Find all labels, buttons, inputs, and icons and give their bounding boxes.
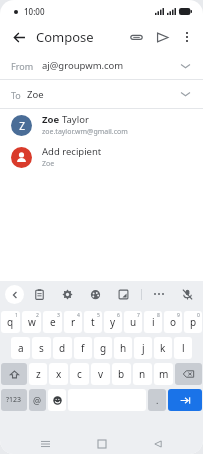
button[interactable]: y bbox=[104, 311, 122, 333]
staticText: b bbox=[118, 367, 125, 381]
staticText: y bbox=[110, 315, 116, 329]
staticText: r bbox=[71, 315, 76, 329]
button[interactable]: f bbox=[74, 337, 92, 359]
button[interactable]: Z bbox=[0, 109, 203, 141]
button[interactable]: p bbox=[184, 311, 202, 333]
staticText: i bbox=[152, 315, 155, 329]
button[interactable]: v bbox=[91, 363, 110, 385]
staticText: k bbox=[160, 341, 166, 355]
staticText: e bbox=[50, 315, 56, 329]
button[interactable]: Resize keyboard bbox=[115, 286, 132, 303]
button[interactable]: b bbox=[112, 363, 131, 385]
button[interactable]: q bbox=[1, 311, 20, 333]
staticText: f bbox=[81, 341, 85, 355]
button[interactable]: At sign bbox=[29, 389, 46, 411]
staticText: Zoe bbox=[42, 113, 62, 126]
button[interactable]: Recent apps bbox=[34, 433, 56, 454]
staticText: Taylor bbox=[62, 113, 89, 126]
staticText: . bbox=[156, 394, 159, 406]
button[interactable]: Backspace bbox=[175, 363, 202, 385]
staticText: aj@groupwm.com bbox=[42, 59, 124, 72]
staticText: n bbox=[139, 367, 146, 381]
staticText: 3 bbox=[57, 312, 60, 319]
button[interactable]: Themes bbox=[87, 286, 104, 303]
button[interactable]: More options bbox=[175, 25, 199, 49]
staticText: q bbox=[7, 315, 14, 329]
staticText: x bbox=[56, 367, 62, 381]
staticText: u bbox=[130, 315, 137, 329]
button[interactable]: Voice input off bbox=[179, 286, 195, 302]
button[interactable]: o bbox=[164, 311, 182, 333]
button[interactable]: w bbox=[22, 311, 41, 333]
staticText: 10:00 bbox=[24, 6, 45, 17]
button[interactable]: s bbox=[32, 337, 51, 359]
button[interactable]: Shift bbox=[1, 363, 27, 385]
button[interactable]: Clipboard bbox=[31, 286, 48, 303]
button[interactable]: To bbox=[0, 80, 203, 108]
button[interactable]: Period bbox=[148, 389, 166, 411]
button[interactable]: Send bbox=[149, 24, 175, 50]
button[interactable]: k bbox=[154, 337, 172, 359]
staticText: @ bbox=[33, 394, 42, 406]
staticText: zoe.taylor.wm@gmail.com bbox=[42, 127, 128, 137]
staticText: v bbox=[98, 367, 104, 381]
staticText: 5 bbox=[97, 312, 100, 319]
button[interactable]: u bbox=[124, 311, 142, 333]
button[interactable]: g bbox=[94, 337, 112, 359]
button[interactable]: From bbox=[0, 52, 203, 79]
staticText: Add recipient bbox=[42, 145, 102, 158]
button[interactable]: d bbox=[53, 337, 72, 359]
button[interactable]: Settings bbox=[59, 286, 76, 303]
staticText: To bbox=[11, 89, 21, 101]
staticText: Zoe bbox=[42, 159, 55, 169]
staticText: o bbox=[170, 315, 177, 329]
button[interactable]: j bbox=[134, 337, 152, 359]
button[interactable]: Emoji bbox=[48, 389, 66, 411]
staticText: Z bbox=[19, 119, 25, 133]
staticText: j bbox=[142, 341, 145, 355]
staticText: w bbox=[28, 315, 36, 329]
button[interactable]: Add recipient bbox=[0, 141, 203, 173]
button[interactable]: l bbox=[174, 337, 192, 359]
staticText: 6 bbox=[117, 312, 120, 319]
button[interactable]: Attach file bbox=[123, 24, 149, 50]
staticText: t bbox=[91, 315, 95, 329]
staticText: Zoe bbox=[27, 88, 44, 101]
button[interactable]: h bbox=[114, 337, 132, 359]
button[interactable]: n bbox=[133, 363, 152, 385]
staticText: From bbox=[11, 60, 34, 72]
staticText: Compose bbox=[36, 28, 94, 46]
button[interactable]: a bbox=[11, 337, 30, 359]
staticText: c bbox=[77, 367, 82, 381]
staticText: 2 bbox=[36, 312, 39, 319]
button[interactable]: e bbox=[43, 311, 62, 333]
button[interactable]: c bbox=[70, 363, 89, 385]
button[interactable]: x bbox=[49, 363, 68, 385]
staticText: 7 bbox=[137, 312, 140, 319]
staticText: 8 bbox=[157, 312, 160, 319]
button[interactable]: m bbox=[154, 363, 173, 385]
button[interactable]: ?123 bbox=[1, 389, 27, 411]
staticText: 9 bbox=[177, 312, 180, 319]
staticText: d bbox=[59, 341, 66, 355]
button[interactable]: i bbox=[144, 311, 162, 333]
button[interactable]: z bbox=[29, 363, 47, 385]
staticText: a bbox=[18, 341, 24, 355]
staticText: 1 bbox=[15, 312, 18, 319]
staticText: m bbox=[159, 367, 169, 381]
staticText: l bbox=[182, 341, 185, 355]
button[interactable]: Back bbox=[147, 433, 169, 454]
button[interactable]: Expand toolbar bbox=[5, 285, 24, 304]
button[interactable]: Home bbox=[91, 433, 113, 454]
staticText: s bbox=[39, 341, 44, 355]
button[interactable]: r bbox=[64, 311, 82, 333]
staticText: ?123 bbox=[6, 395, 22, 405]
button[interactable]: Back bbox=[7, 25, 31, 49]
button[interactable]: t bbox=[84, 311, 102, 333]
staticText: 0 bbox=[197, 312, 200, 319]
button[interactable]: More keyboard options bbox=[151, 286, 167, 302]
button[interactable]: Next field bbox=[168, 389, 202, 411]
staticText: z bbox=[36, 367, 41, 381]
staticText: g bbox=[100, 341, 107, 355]
